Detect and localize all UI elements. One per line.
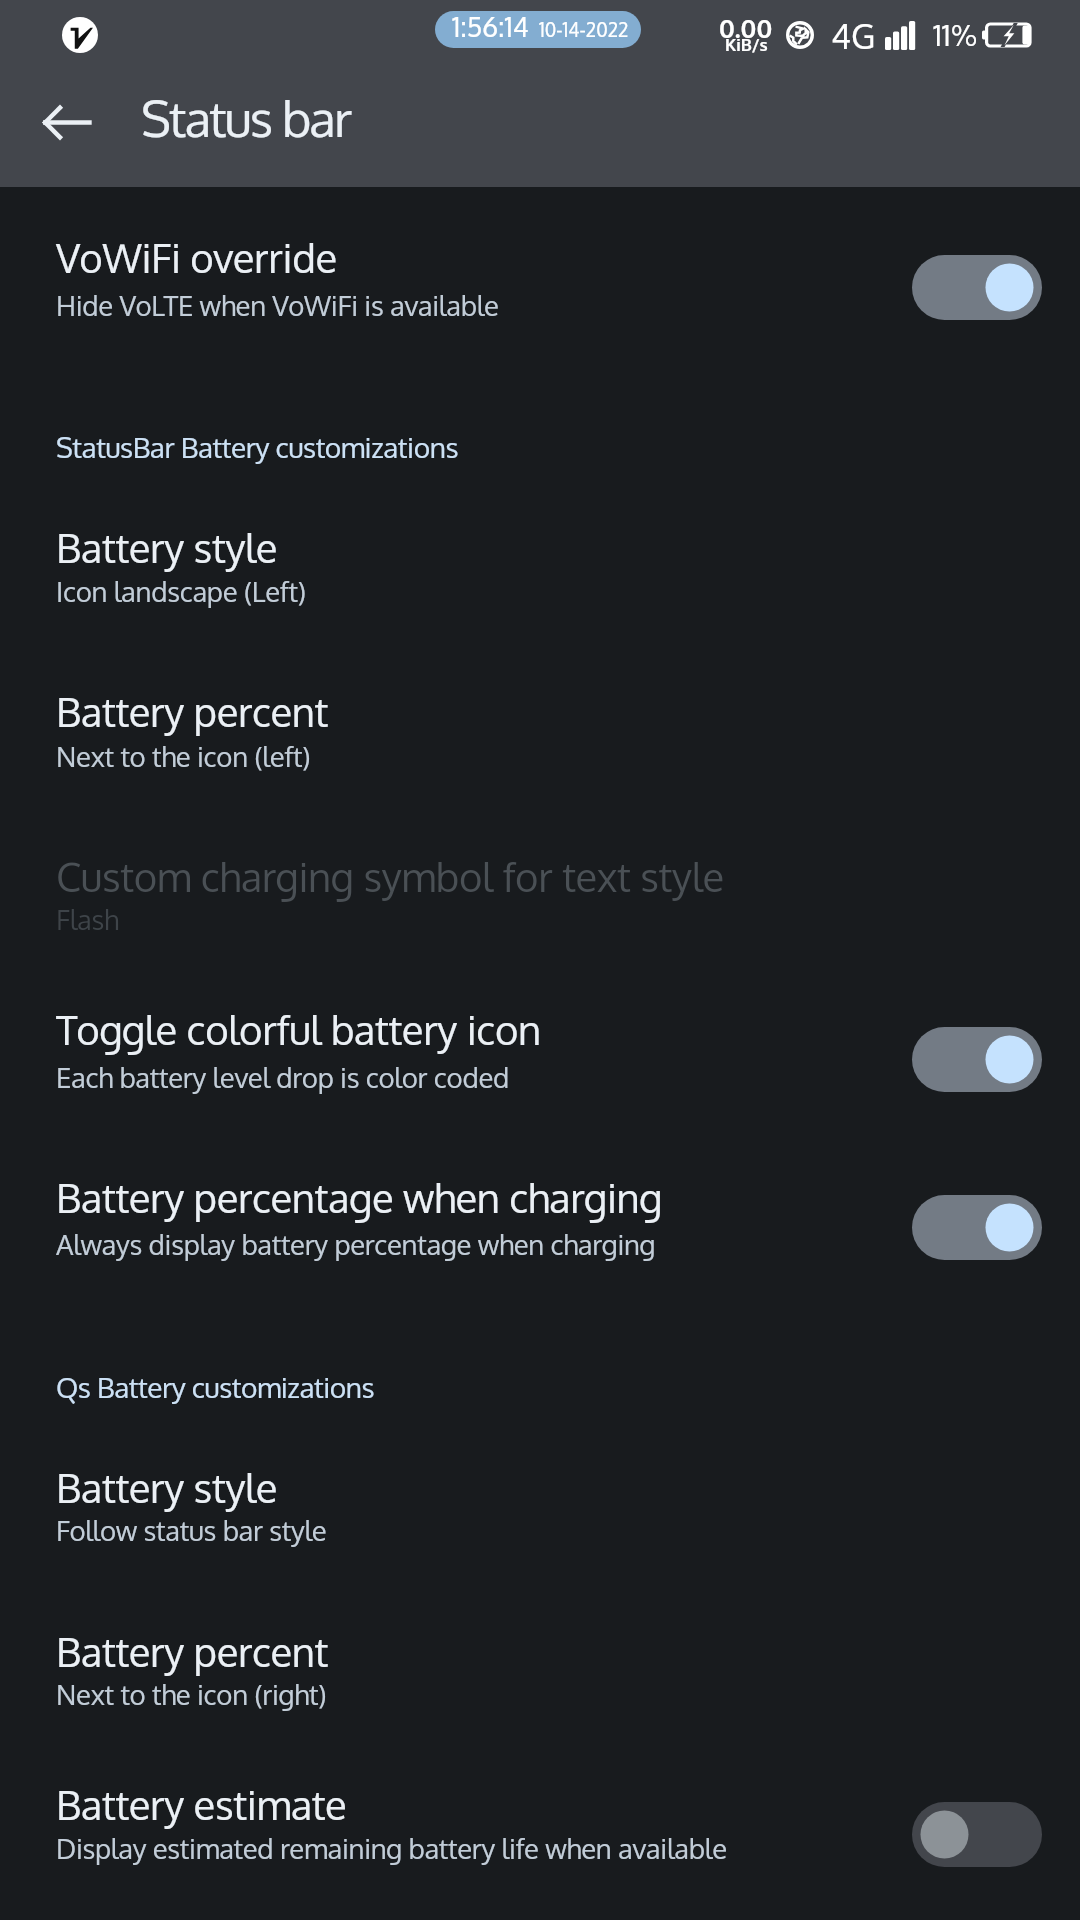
button[interactable]: Toggle, on xyxy=(912,255,1042,320)
staticText: 0.00 xyxy=(719,12,773,44)
staticText: Battery estimate xyxy=(56,1779,347,1830)
staticText: Qs Battery customizations xyxy=(56,1369,375,1404)
button[interactable]: VoWiFi override xyxy=(0,215,1080,355)
staticText: Each battery level drop is color coded xyxy=(56,1060,509,1095)
staticText: Battery percent xyxy=(56,1626,329,1677)
button[interactable]: Battery style xyxy=(0,505,1080,635)
button[interactable]: Toggle, off xyxy=(912,1802,1042,1867)
staticText: Hide VoLTE when VoWiFi is available xyxy=(56,288,499,323)
button[interactable]: Toggle, on xyxy=(912,1195,1042,1260)
staticText: Battery percent xyxy=(56,686,329,737)
staticText: VoWiFi override xyxy=(56,232,337,283)
button[interactable]: Battery estimate xyxy=(0,1763,1080,1893)
staticText: KiB/s xyxy=(725,34,768,55)
staticText: Display estimated remaining battery life… xyxy=(56,1831,727,1866)
staticText: Battery style xyxy=(56,522,278,573)
staticText: Status bar xyxy=(141,86,351,149)
staticText: 10-14-2022 xyxy=(539,17,629,41)
button[interactable]: Battery percentage when charging xyxy=(0,1158,1080,1288)
staticText: 11% xyxy=(933,16,978,53)
button[interactable]: Battery percent xyxy=(0,1610,1080,1740)
button[interactable]: Toggle, on xyxy=(912,1027,1042,1092)
staticText: Always display battery percentage when c… xyxy=(56,1227,656,1262)
staticText: Follow status bar style xyxy=(56,1513,327,1548)
staticText: 1:56:14 xyxy=(452,11,529,43)
staticText: Flash xyxy=(56,902,119,937)
staticText: Toggle colorful battery icon xyxy=(56,1004,541,1055)
staticText: Next to the icon (right) xyxy=(56,1677,327,1712)
staticText: Custom charging symbol for text style xyxy=(56,851,724,902)
button[interactable]: Toggle colorful battery icon xyxy=(0,990,1080,1120)
staticText: Battery percentage when charging xyxy=(56,1172,663,1223)
staticText: 4G xyxy=(831,14,876,57)
button[interactable]: Custom charging symbol for text style xyxy=(0,835,1080,965)
button[interactable]: Navigate up xyxy=(23,79,109,165)
button[interactable]: Battery percent xyxy=(0,670,1080,800)
staticText: StatusBar Battery customizations xyxy=(56,429,459,464)
staticText: Icon landscape (Left) xyxy=(56,574,306,609)
button[interactable]: Battery style xyxy=(0,1445,1080,1575)
staticText: Battery style xyxy=(56,1462,278,1513)
staticText: Next to the icon (left) xyxy=(56,739,311,774)
